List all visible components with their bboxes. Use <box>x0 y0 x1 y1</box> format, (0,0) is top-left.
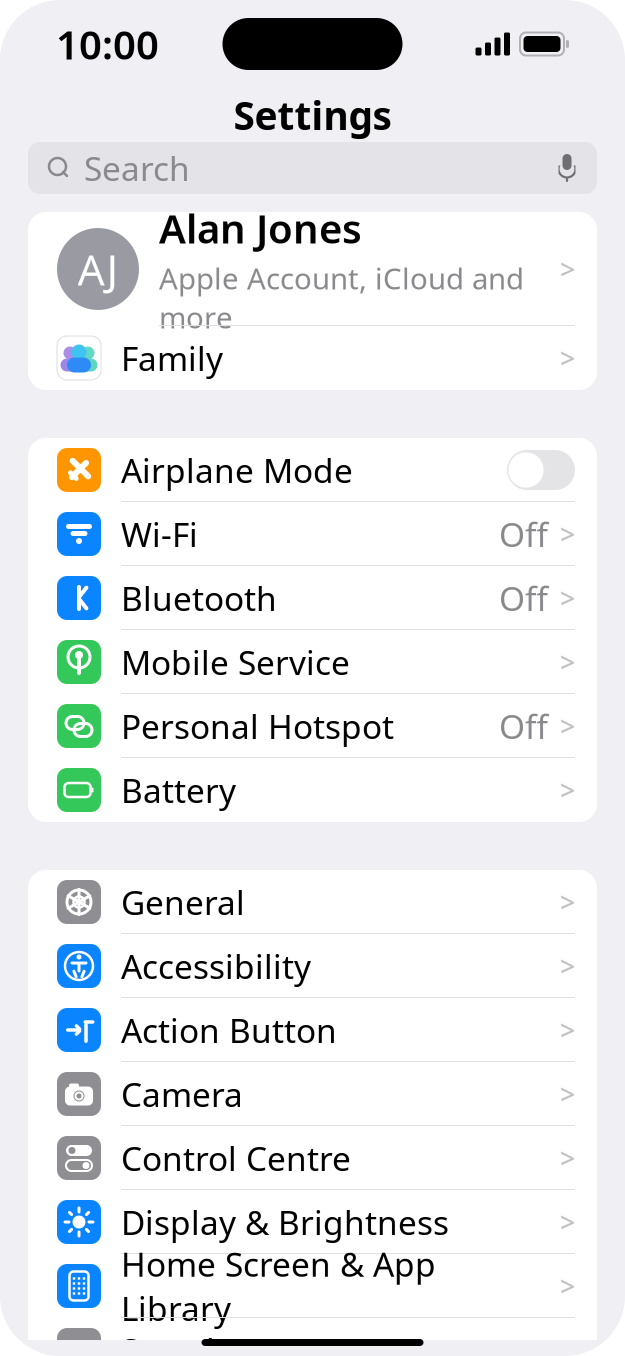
staticText: Personal Hotspot <box>121 704 394 748</box>
staticText: Wi-Fi <box>121 512 198 556</box>
button[interactable]: Camera <box>28 1062 597 1126</box>
staticText: Airplane Mode <box>121 448 353 492</box>
staticText: Search <box>121 1328 227 1356</box>
staticText: Settings <box>233 89 391 141</box>
button[interactable]: Airplane Mode <box>28 438 597 502</box>
staticText: Family <box>121 336 223 380</box>
staticText: > <box>560 884 575 920</box>
staticText: Action Button <box>121 1008 337 1052</box>
staticText: Off <box>499 512 548 556</box>
staticText: AJ <box>77 241 118 297</box>
staticText: > <box>560 1140 575 1176</box>
staticText: > <box>560 1204 575 1240</box>
staticText: General <box>121 880 245 924</box>
staticText: 10:00 <box>56 17 159 70</box>
button[interactable]: AJ <box>28 212 597 326</box>
staticText: Camera <box>121 1072 243 1116</box>
button[interactable]: Battery <box>28 758 597 822</box>
button[interactable]: Display & Brightness <box>28 1190 597 1254</box>
button[interactable]: Mobile Service <box>28 630 597 694</box>
staticText: > <box>560 1076 575 1112</box>
button[interactable]: General <box>28 870 597 934</box>
staticText: Accessibility <box>121 944 311 988</box>
staticText: Mobile Service <box>121 640 350 684</box>
button[interactable]: Bluetooth <box>28 566 597 630</box>
button[interactable]: Personal Hotspot <box>28 694 597 758</box>
staticText: Display & Brightness <box>121 1200 449 1244</box>
staticText: Battery <box>121 768 236 812</box>
staticText: Off <box>499 576 548 620</box>
staticText: > <box>560 516 575 552</box>
staticText: Home Screen & App Library <box>121 1242 436 1330</box>
staticText: > <box>560 1012 575 1048</box>
button[interactable]: Q <box>28 1318 597 1356</box>
staticText: Apple Account, iCloud and more <box>159 259 524 336</box>
staticText: Off <box>499 704 548 748</box>
staticText: > <box>560 1268 575 1304</box>
staticText: > <box>560 644 575 680</box>
staticText: Control Centre <box>121 1136 351 1180</box>
staticText: Search <box>84 146 190 190</box>
button[interactable]: Control Centre <box>28 1126 597 1190</box>
staticText: > <box>560 340 575 376</box>
button[interactable]: Wi-Fi <box>28 502 597 566</box>
button[interactable]: Home Screen & App Library <box>28 1254 597 1318</box>
button[interactable]: Search <box>0 142 625 194</box>
staticText: Q <box>67 1330 90 1356</box>
staticText: Alan Jones <box>159 201 362 255</box>
staticText: > <box>560 772 575 808</box>
staticText: > <box>560 1332 575 1356</box>
staticText: > <box>560 251 575 287</box>
staticText: > <box>560 948 575 984</box>
staticText: > <box>560 580 575 616</box>
button[interactable]: Accessibility <box>28 934 597 998</box>
staticText: Bluetooth <box>121 576 277 620</box>
button[interactable]: Action Button <box>28 998 597 1062</box>
staticText: > <box>560 708 575 744</box>
button[interactable]: Family <box>28 326 597 390</box>
